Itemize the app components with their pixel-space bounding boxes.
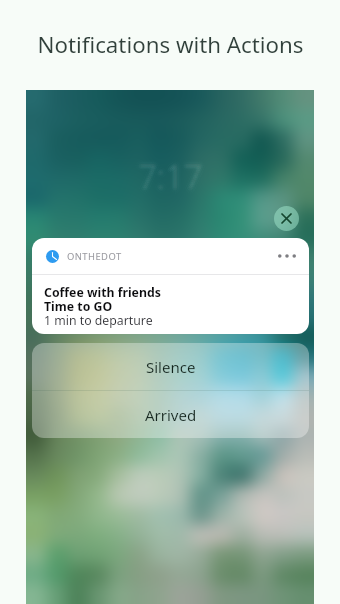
staticText: Arrived [145,405,197,425]
staticText: 7:17 [135,151,200,196]
staticText: 7:17 [140,148,205,193]
staticText: 7:17 [137,157,202,202]
staticText: 7:17 [138,157,203,202]
staticText: 7:17 [136,150,201,195]
staticText: 7:17 [136,156,201,201]
staticText: 7:17 [131,161,196,206]
staticText: 7:17 [138,148,203,193]
staticText: 7:17 [133,149,198,194]
staticText: 7:17 [138,164,203,209]
staticText: 7:17 [136,158,201,203]
staticText: 7:17 [142,163,207,208]
staticText: 7:17 [135,155,200,200]
staticText: 7:17 [144,156,209,201]
staticText: 7:17 [141,161,206,206]
staticText: 7:17 [139,155,204,200]
staticText: 7:17 [137,155,202,200]
staticText: 7:17 [138,159,203,204]
staticText: ONTHEDOT [67,250,122,263]
staticText: 7:17 [140,152,205,197]
staticText: 7:17 [140,156,205,201]
staticText: 7:17 [141,155,206,200]
staticText: 7:17 [137,151,202,196]
button[interactable]: Silence [32,343,309,390]
staticText: 7:17 [144,148,209,193]
staticText: 7:17 [141,153,206,198]
staticText: 7:17 [145,157,210,202]
staticText: Silence [146,357,196,377]
staticText: 7:17 [138,144,203,189]
staticText: 7:17 [132,154,197,199]
staticText: 7:17 [139,153,204,198]
staticText: 7:17 [137,153,202,198]
staticText: 7:17 [140,158,205,203]
staticText: 7:17 [135,153,200,198]
staticText: 7:17 [134,145,199,190]
staticText: 7:17 [144,160,209,205]
staticText: 7:17 [138,152,203,197]
staticText: 7:17 [140,160,205,205]
staticText: 7:17 [137,153,202,198]
staticText: 7:17 [139,155,204,200]
staticText: Coffee with friends [44,284,161,301]
staticText: 7:17 [138,160,203,205]
staticText: 7:17 [148,154,213,199]
staticText: 7:17 [130,154,195,199]
staticText: 7:17 [139,157,204,202]
staticText: 7:17 [137,155,202,200]
staticText: 7:17 [143,159,208,204]
staticText: 7:17 [145,161,210,206]
staticText: 7:17 [141,157,206,202]
button[interactable]: Arrived [32,391,309,438]
staticText: 7:17 [140,154,205,199]
staticText: 7:17 [146,154,211,199]
staticText: 7:17 [129,158,194,203]
staticText: 7:17 [135,157,200,202]
staticText: 7:17 [139,153,204,198]
staticText: 7:17 [136,160,201,205]
button[interactable]: Dismiss notification [274,206,299,231]
staticText: 7:17 [143,149,208,194]
staticText: 7:17 [128,154,193,199]
staticText: 7:17 [138,149,203,194]
staticText: 7:17 [137,155,202,200]
staticText: 7:17 [134,152,199,197]
staticText: 7:17 [136,152,201,197]
staticText: 7:17 [142,156,207,201]
staticText: 7:17 [145,147,210,192]
staticText: 7:17 [138,151,203,196]
staticText: 7:17 [135,154,200,199]
staticText: 7:17 [147,150,212,195]
staticText: 7:17 [132,160,197,205]
staticText: 7:17 [138,154,203,199]
staticText: 7:17 [133,154,198,199]
staticText: 7:17 [134,163,199,208]
staticText: 7:17 [147,158,212,203]
staticText: 7:17 [139,155,204,200]
staticText: 7:17 [138,146,203,191]
staticText: 7:17 [132,156,197,201]
staticText: 7:17 [134,156,199,201]
staticText: 7:17 [141,147,206,192]
staticText: 7:17 [137,153,202,198]
staticText: 7:17 [141,151,206,196]
staticText: 7:17 [139,151,204,196]
staticText: 7:17 [142,152,207,197]
staticText: Notifications with Actions [37,29,304,59]
staticText: 7:17 [144,152,209,197]
staticText: 7:17 [133,159,198,204]
staticText: Time to GO [44,298,113,315]
staticText: 7:17 [138,156,203,201]
staticText: 7:17 [144,154,209,199]
staticText: 7:17 [145,151,210,196]
staticText: 1 min to departure [44,312,153,329]
button[interactable]: ONTHEDOT [32,238,309,334]
staticText: 7:17 [131,151,196,196]
staticText: 7:17 [131,147,196,192]
staticText: 7:17 [135,147,200,192]
staticText: 7:17 [132,148,197,193]
staticText: 7:17 [132,152,197,197]
staticText: 7:17 [139,153,204,198]
staticText: 7:17 [142,145,207,190]
staticText: 7:17 [135,161,200,206]
